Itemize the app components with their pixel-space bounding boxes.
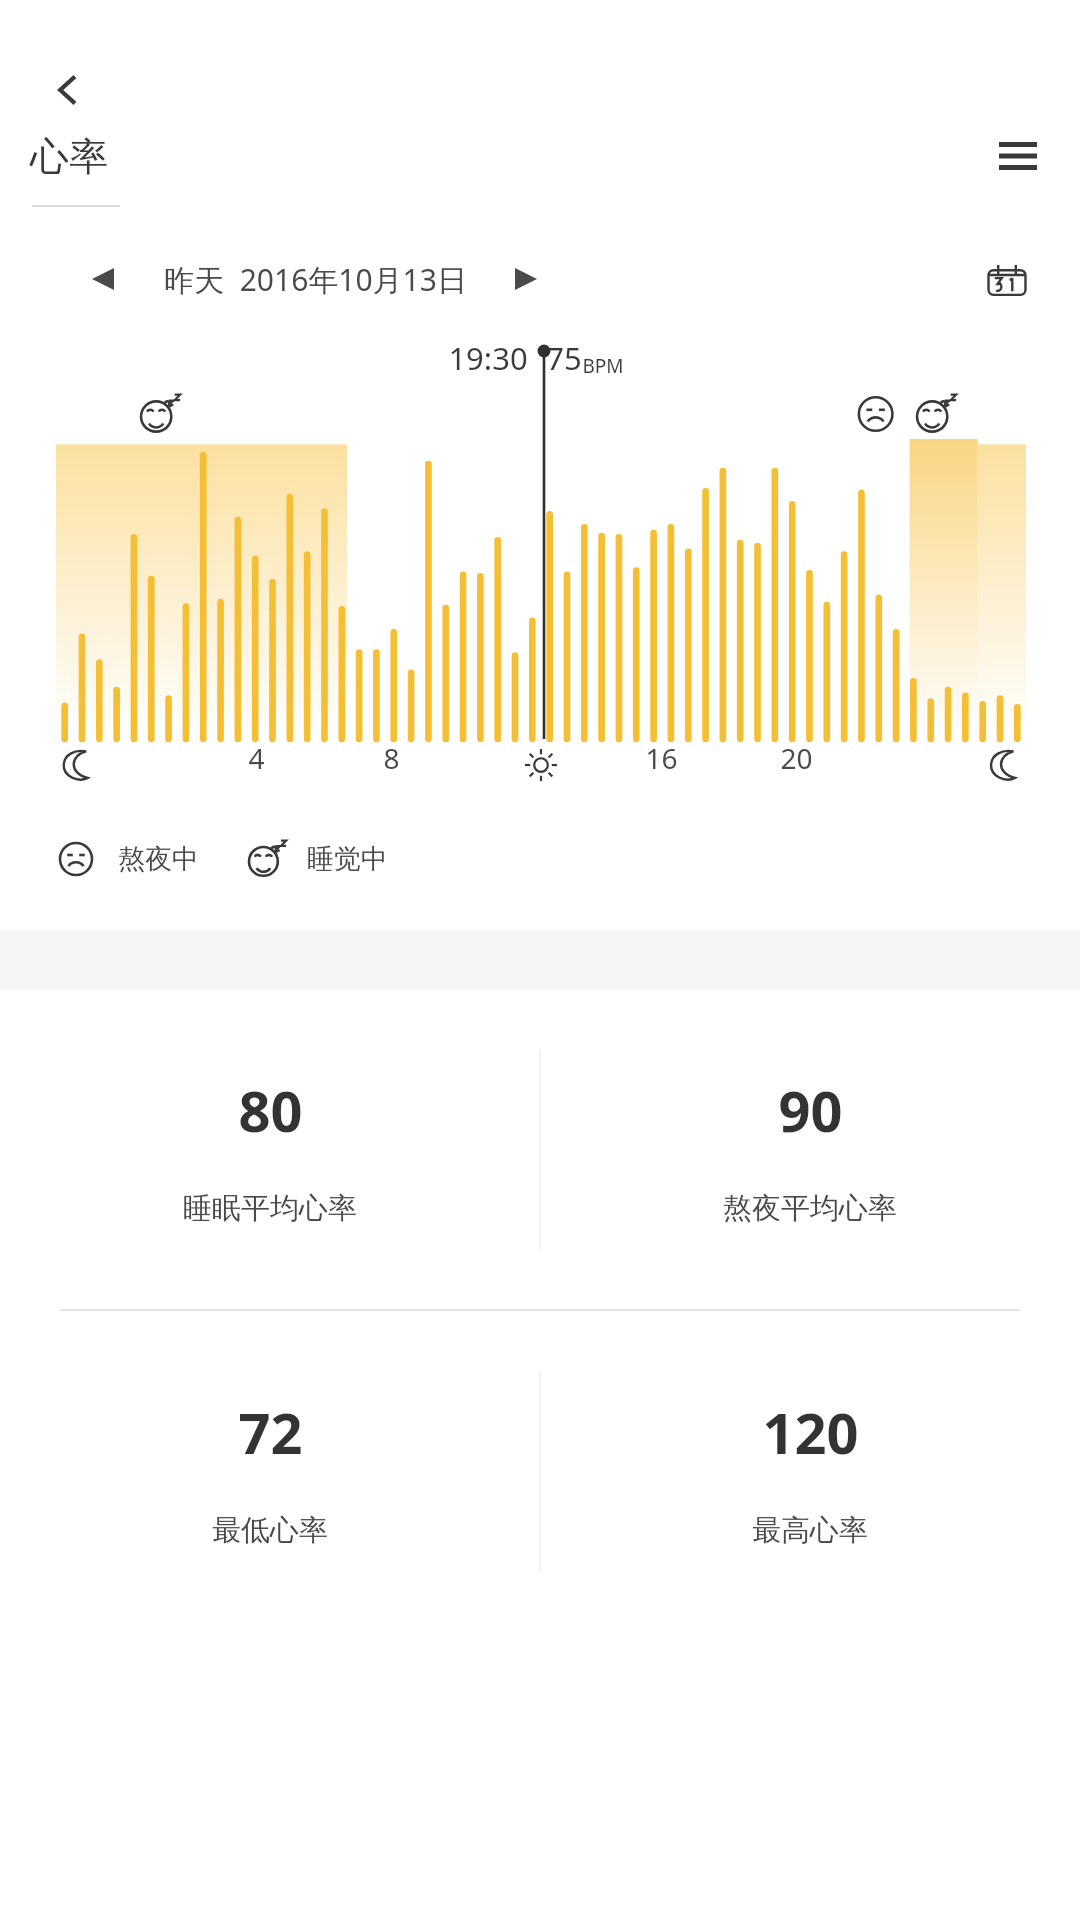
staticText: 睡觉中 (307, 842, 388, 876)
button[interactable]: Menu (986, 124, 1050, 188)
staticText: 昨天 2016年10月13日 (164, 259, 467, 300)
button[interactable]: 昨天 2016年10月13日 (164, 259, 467, 300)
staticText: BPM (582, 353, 624, 379)
staticText: 最高心率 (752, 1512, 868, 1549)
staticText: 熬夜平均心率 (723, 1190, 897, 1227)
staticText: 8 (383, 739, 400, 777)
button[interactable]: 120 (540, 1311, 1080, 1631)
staticText: 80 (238, 1072, 303, 1148)
button[interactable]: Back (40, 62, 96, 118)
button[interactable]: Pick date (978, 250, 1036, 308)
staticText: 90 (778, 1072, 843, 1148)
staticText: 72 (238, 1394, 303, 1470)
staticText: 16 (645, 739, 678, 777)
staticText: 睡眠平均心率 (183, 1190, 357, 1227)
button[interactable]: Next day (501, 254, 551, 304)
staticText: 最低心率 (212, 1512, 328, 1549)
button[interactable]: 80 (0, 989, 540, 1309)
staticText: 心率 (30, 132, 108, 181)
button[interactable]: 72 (0, 1311, 540, 1631)
button[interactable]: 90 (540, 989, 1080, 1309)
button[interactable]: Previous day (78, 254, 128, 304)
staticText: 19:30 (448, 337, 528, 379)
staticText: 熬夜中 (118, 842, 199, 876)
staticText: 120 (762, 1394, 859, 1470)
staticText: 4 (248, 739, 265, 777)
staticText: 20 (780, 739, 813, 777)
staticText: 75 (546, 337, 582, 379)
